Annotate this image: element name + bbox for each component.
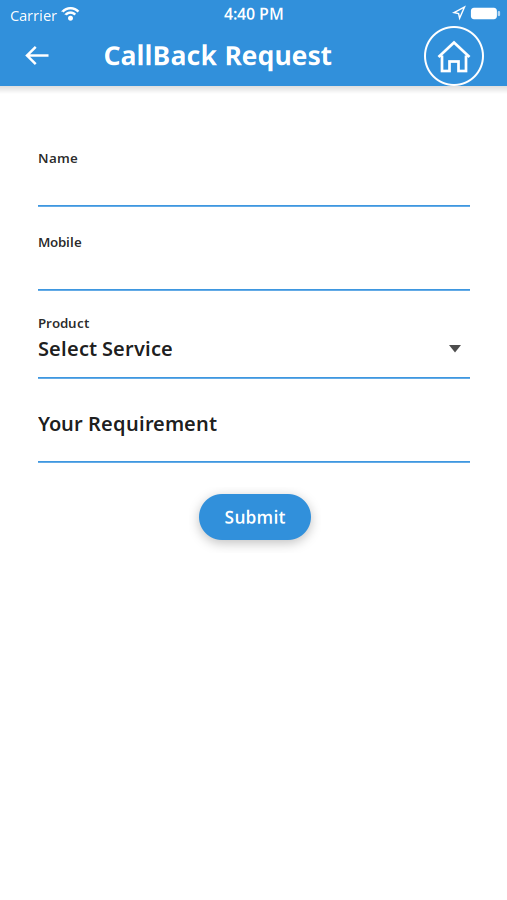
staticText: Name (38, 149, 78, 167)
staticText: Mobile (38, 233, 82, 251)
button[interactable]: Select Service (38, 333, 470, 363)
staticText: Product (38, 314, 89, 332)
button[interactable]: Submit (199, 494, 311, 540)
button[interactable]: Back (15, 35, 59, 75)
staticText: Select Service (38, 335, 173, 362)
staticText: Submit (224, 505, 285, 528)
staticText: CallBack Request (103, 37, 332, 73)
button[interactable]: Home (424, 26, 484, 86)
staticText: Your Requirement (38, 410, 217, 437)
staticText: 4:40 PM (224, 3, 284, 24)
staticText: Carrier (10, 5, 57, 25)
